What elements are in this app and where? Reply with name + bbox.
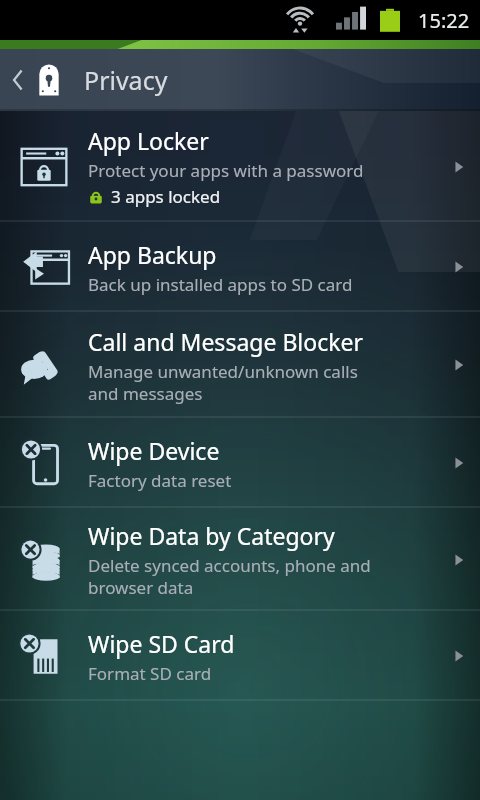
button[interactable]: App Backup — [0, 222, 480, 312]
button[interactable]: Call and Message Blocker — [0, 312, 480, 418]
button[interactable]: Privacy — [0, 49, 480, 111]
staticText: Manage unwanted/unknown calls and messag… — [88, 360, 358, 405]
staticText: 3 apps locked — [111, 185, 221, 208]
staticText: App Backup — [88, 239, 217, 270]
staticText: Wipe SD Card — [88, 628, 235, 659]
staticText: Call and Message Blocker — [88, 326, 363, 357]
staticText: Protect your apps with a password — [88, 159, 364, 182]
staticText: Format SD card — [88, 662, 212, 685]
staticText: Factory data reset — [88, 469, 232, 492]
button[interactable]: App Locker — [0, 111, 480, 222]
staticText: Privacy — [84, 63, 168, 97]
staticText: Wipe Device — [88, 435, 220, 466]
staticText: 15:22 — [418, 7, 470, 34]
staticText: Delete synced accounts, phone and browse… — [88, 554, 371, 599]
button[interactable]: Wipe Data by Category — [0, 508, 480, 611]
staticText: Wipe Data by Category — [88, 520, 335, 551]
button[interactable]: Wipe SD Card — [0, 611, 480, 701]
staticText: Back up installed apps to SD card — [88, 273, 353, 296]
button[interactable]: Wipe Device — [0, 418, 480, 508]
staticText: App Locker — [88, 125, 209, 156]
